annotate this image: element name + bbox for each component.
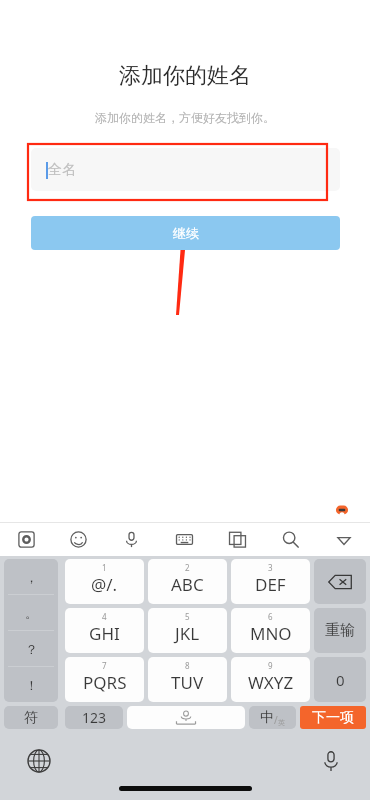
- staticText: 8: [185, 660, 190, 671]
- button[interactable]: 3: [231, 559, 310, 604]
- staticText: 添加你的姓名，方便好友找到你。: [0, 110, 370, 125]
- button[interactable]: ！: [4, 667, 58, 702]
- staticText: GHI: [89, 622, 120, 645]
- button[interactable]: Change language: [22, 744, 56, 778]
- staticText: 3: [268, 562, 273, 573]
- button[interactable]: Voice input: [314, 744, 348, 778]
- staticText: 符: [24, 709, 38, 727]
- button[interactable]: Search: [264, 523, 317, 556]
- button[interactable]: Emoji: [52, 523, 105, 556]
- button[interactable]: 5: [148, 608, 227, 653]
- staticText: MNO: [250, 622, 292, 645]
- staticText: WXYZ: [248, 671, 294, 694]
- button[interactable]: 重输: [314, 608, 366, 653]
- button[interactable]: 8: [148, 657, 227, 702]
- button[interactable]: 7: [65, 657, 144, 702]
- button[interactable]: Hide keyboard: [317, 523, 370, 556]
- staticText: 添加你的姓名: [0, 62, 370, 90]
- staticText: 下一项: [312, 709, 354, 727]
- staticText: 9: [268, 660, 273, 671]
- staticText: 5: [185, 611, 190, 622]
- button[interactable]: Sogou: [0, 523, 52, 556]
- button[interactable]: 继续: [31, 216, 340, 250]
- staticText: DEF: [255, 573, 286, 596]
- staticText: 6: [268, 611, 273, 622]
- staticText: 0: [336, 670, 345, 690]
- button[interactable]: 0: [314, 657, 366, 702]
- staticText: ！: [25, 677, 38, 693]
- staticText: ，: [25, 569, 38, 585]
- staticText: JKL: [175, 622, 200, 645]
- button[interactable]: 下一项: [300, 706, 366, 729]
- staticText: 。: [25, 605, 38, 621]
- staticText: 重输: [325, 621, 355, 640]
- staticText: ？: [25, 641, 38, 657]
- staticText: 7: [102, 660, 107, 671]
- staticText: ABC: [171, 573, 204, 596]
- button[interactable]: ？: [4, 631, 58, 666]
- staticText: PQRS: [83, 671, 127, 694]
- button[interactable]: 中: [249, 706, 296, 729]
- button[interactable]: 符: [4, 706, 58, 729]
- staticText: 4: [102, 611, 107, 622]
- staticText: 2: [185, 562, 190, 573]
- button[interactable]: 。: [4, 595, 58, 630]
- staticText: 中: [260, 709, 274, 727]
- button[interactable]: Space: [127, 706, 245, 729]
- button[interactable]: 123: [65, 706, 123, 729]
- button[interactable]: 4: [65, 608, 144, 653]
- staticText: 全名: [48, 161, 76, 179]
- button[interactable]: ，: [4, 559, 58, 594]
- button[interactable]: Voice input: [105, 523, 158, 556]
- staticText: /: [274, 713, 278, 727]
- staticText: TUV: [171, 671, 204, 694]
- button[interactable]: 1: [65, 559, 144, 604]
- button[interactable]: 2: [148, 559, 227, 604]
- button[interactable]: Delete: [314, 559, 366, 604]
- staticText: 英: [278, 718, 285, 727]
- staticText: 继续: [173, 225, 199, 241]
- button[interactable]: Translate: [211, 523, 264, 556]
- staticText: @/.: [91, 573, 118, 596]
- staticText: 123: [82, 708, 107, 727]
- staticText: 1: [102, 562, 107, 573]
- button[interactable]: 全名: [31, 148, 340, 191]
- button[interactable]: 9: [231, 657, 310, 702]
- button[interactable]: 6: [231, 608, 310, 653]
- button[interactable]: Keyboard: [158, 523, 211, 556]
